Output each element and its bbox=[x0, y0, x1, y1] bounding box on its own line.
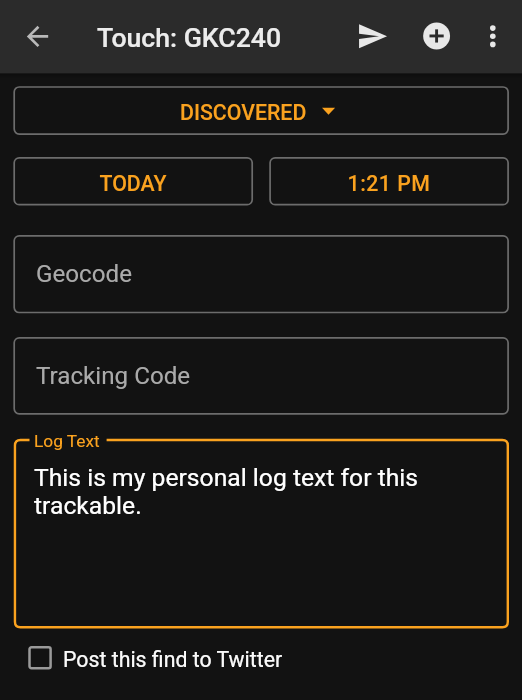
button[interactable]: Navigate up bbox=[14, 13, 62, 61]
button[interactable]: Add bbox=[413, 12, 461, 60]
staticText: This is my personal log text for this tr… bbox=[34, 463, 489, 700]
staticText: DISCOVERED bbox=[180, 100, 307, 125]
staticText: Post this find to Twitter bbox=[63, 647, 283, 672]
staticText: TODAY bbox=[13, 171, 253, 591]
staticText: Touch: GKC240 bbox=[97, 22, 282, 53]
button[interactable]: Send log bbox=[349, 13, 397, 61]
button[interactable] bbox=[14, 440, 508, 627]
button[interactable] bbox=[13, 157, 253, 205]
button[interactable]: More options bbox=[469, 13, 517, 61]
button[interactable] bbox=[13, 86, 509, 135]
button[interactable] bbox=[269, 157, 509, 205]
button[interactable] bbox=[13, 337, 509, 414]
button[interactable] bbox=[24, 641, 286, 675]
staticText: Tracking Code bbox=[36, 362, 191, 390]
staticText: Geocode bbox=[36, 260, 133, 288]
button[interactable] bbox=[13, 235, 509, 313]
staticText: 1:21 PM bbox=[269, 171, 509, 591]
staticText: Log Text bbox=[34, 431, 100, 451]
